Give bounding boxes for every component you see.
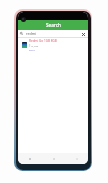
staticText: ₹14,999 xyxy=(29,44,39,47)
button[interactable]: Recent apps xyxy=(18,153,42,164)
button[interactable]: Home xyxy=(42,153,65,164)
button[interactable]: Back xyxy=(65,153,88,164)
button[interactable]: Search xyxy=(18,20,88,30)
staticText: redmi xyxy=(26,31,37,36)
button[interactable]: Redmi Go 1GB 8GB xyxy=(18,38,88,51)
staticText: 2019 xyxy=(29,48,35,51)
staticText: Redmi Go 1GB 8GB xyxy=(29,39,57,43)
button[interactable]: redmi xyxy=(18,30,88,37)
button[interactable]: Clear search xyxy=(80,31,86,37)
staticText: Search xyxy=(46,22,61,28)
